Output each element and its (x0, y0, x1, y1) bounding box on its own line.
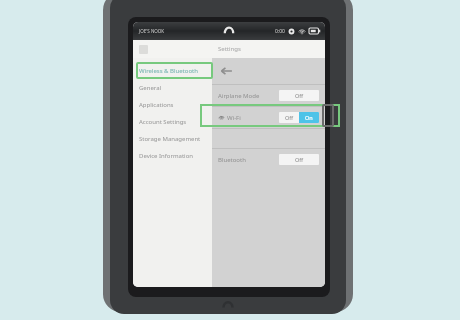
staticText: Wi-Fi (227, 114, 241, 122)
button[interactable]: Off (279, 154, 319, 165)
staticText: Wireless & Bluetooth (139, 67, 198, 75)
staticText: Device Information (139, 152, 194, 160)
staticText: Off (285, 114, 294, 121)
button[interactable]: Bluetooth (212, 149, 325, 170)
button[interactable]: Wi-Fi (212, 107, 325, 128)
staticText: Storage Management (139, 135, 201, 143)
staticText: Account Settings (139, 118, 187, 126)
button[interactable]: Off (279, 90, 319, 101)
staticText: Applications (139, 101, 174, 109)
button[interactable]: Device Information (133, 147, 212, 164)
staticText: Bluetooth (218, 156, 246, 164)
button[interactable]: Applications (133, 96, 212, 113)
staticText: 0:00 (275, 28, 285, 35)
button[interactable]: Storage Management (133, 130, 212, 147)
staticText: General (139, 84, 162, 92)
staticText: JOE'S NOOK (139, 28, 165, 34)
button[interactable]: Wireless & Bluetooth (133, 62, 212, 79)
button[interactable]: Back (219, 65, 233, 77)
button[interactable]: Airplane Mode (212, 85, 325, 106)
button[interactable]: Off (279, 112, 319, 123)
button[interactable]: Account Settings (133, 113, 212, 130)
staticText: Settings (218, 45, 241, 53)
staticText: Airplane Mode (218, 92, 260, 100)
staticText: Off (295, 92, 304, 99)
staticText: On (305, 114, 313, 121)
button[interactable]: General (133, 79, 212, 96)
staticText: Off (295, 156, 304, 163)
